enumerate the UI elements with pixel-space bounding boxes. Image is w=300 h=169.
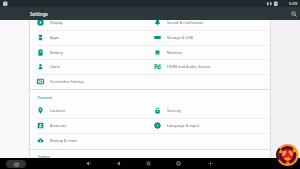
staticText: Apps (50, 35, 59, 40)
button[interactable]: Sound & notification (147, 15, 264, 30)
staticText: Sound & notification (167, 20, 204, 25)
button[interactable]: Location (30, 103, 147, 118)
button[interactable]: Backup & reset (30, 133, 147, 148)
button[interactable]: Screenshot (6, 160, 26, 168)
button[interactable]: Storage & USB (147, 30, 264, 45)
staticText: Accounts (50, 123, 67, 128)
button[interactable]: HDMI and Audio_Source (147, 59, 264, 74)
button[interactable]: Battery (30, 45, 147, 60)
staticText: Storage & USB (167, 35, 193, 40)
staticText: Settings (30, 11, 48, 17)
staticText: Display (50, 20, 63, 25)
button[interactable]: Volume (82, 158, 94, 169)
staticText: Security (167, 108, 182, 113)
staticText: 5:09 (289, 1, 298, 7)
button[interactable]: Users (30, 59, 147, 74)
staticText: System (38, 154, 50, 159)
button[interactable]: Recents (172, 158, 184, 169)
button[interactable]: Home (142, 158, 154, 169)
staticText: Language & input (167, 123, 199, 128)
button[interactable]: Display (30, 15, 147, 30)
staticText: Location (50, 108, 66, 113)
button[interactable]: Back (112, 158, 124, 169)
staticText: Backup & reset (50, 138, 77, 143)
staticText: Personal (38, 95, 53, 100)
button[interactable]: More (204, 158, 216, 169)
button[interactable]: Accounts (30, 118, 147, 133)
staticText: Battery (50, 50, 63, 55)
staticText: Screenshot Setting (50, 79, 84, 84)
staticText: Memory (167, 50, 182, 55)
button[interactable]: Screenshot Setting (30, 74, 147, 89)
button[interactable]: Search (287, 7, 300, 20)
button[interactable]: Security (147, 103, 264, 118)
button[interactable]: Memory (147, 45, 264, 60)
staticText: Users (50, 64, 61, 69)
button[interactable]: Apps (30, 30, 147, 45)
button[interactable]: Language & input (147, 118, 264, 133)
staticText: HDMI and Audio_Source (167, 64, 211, 69)
